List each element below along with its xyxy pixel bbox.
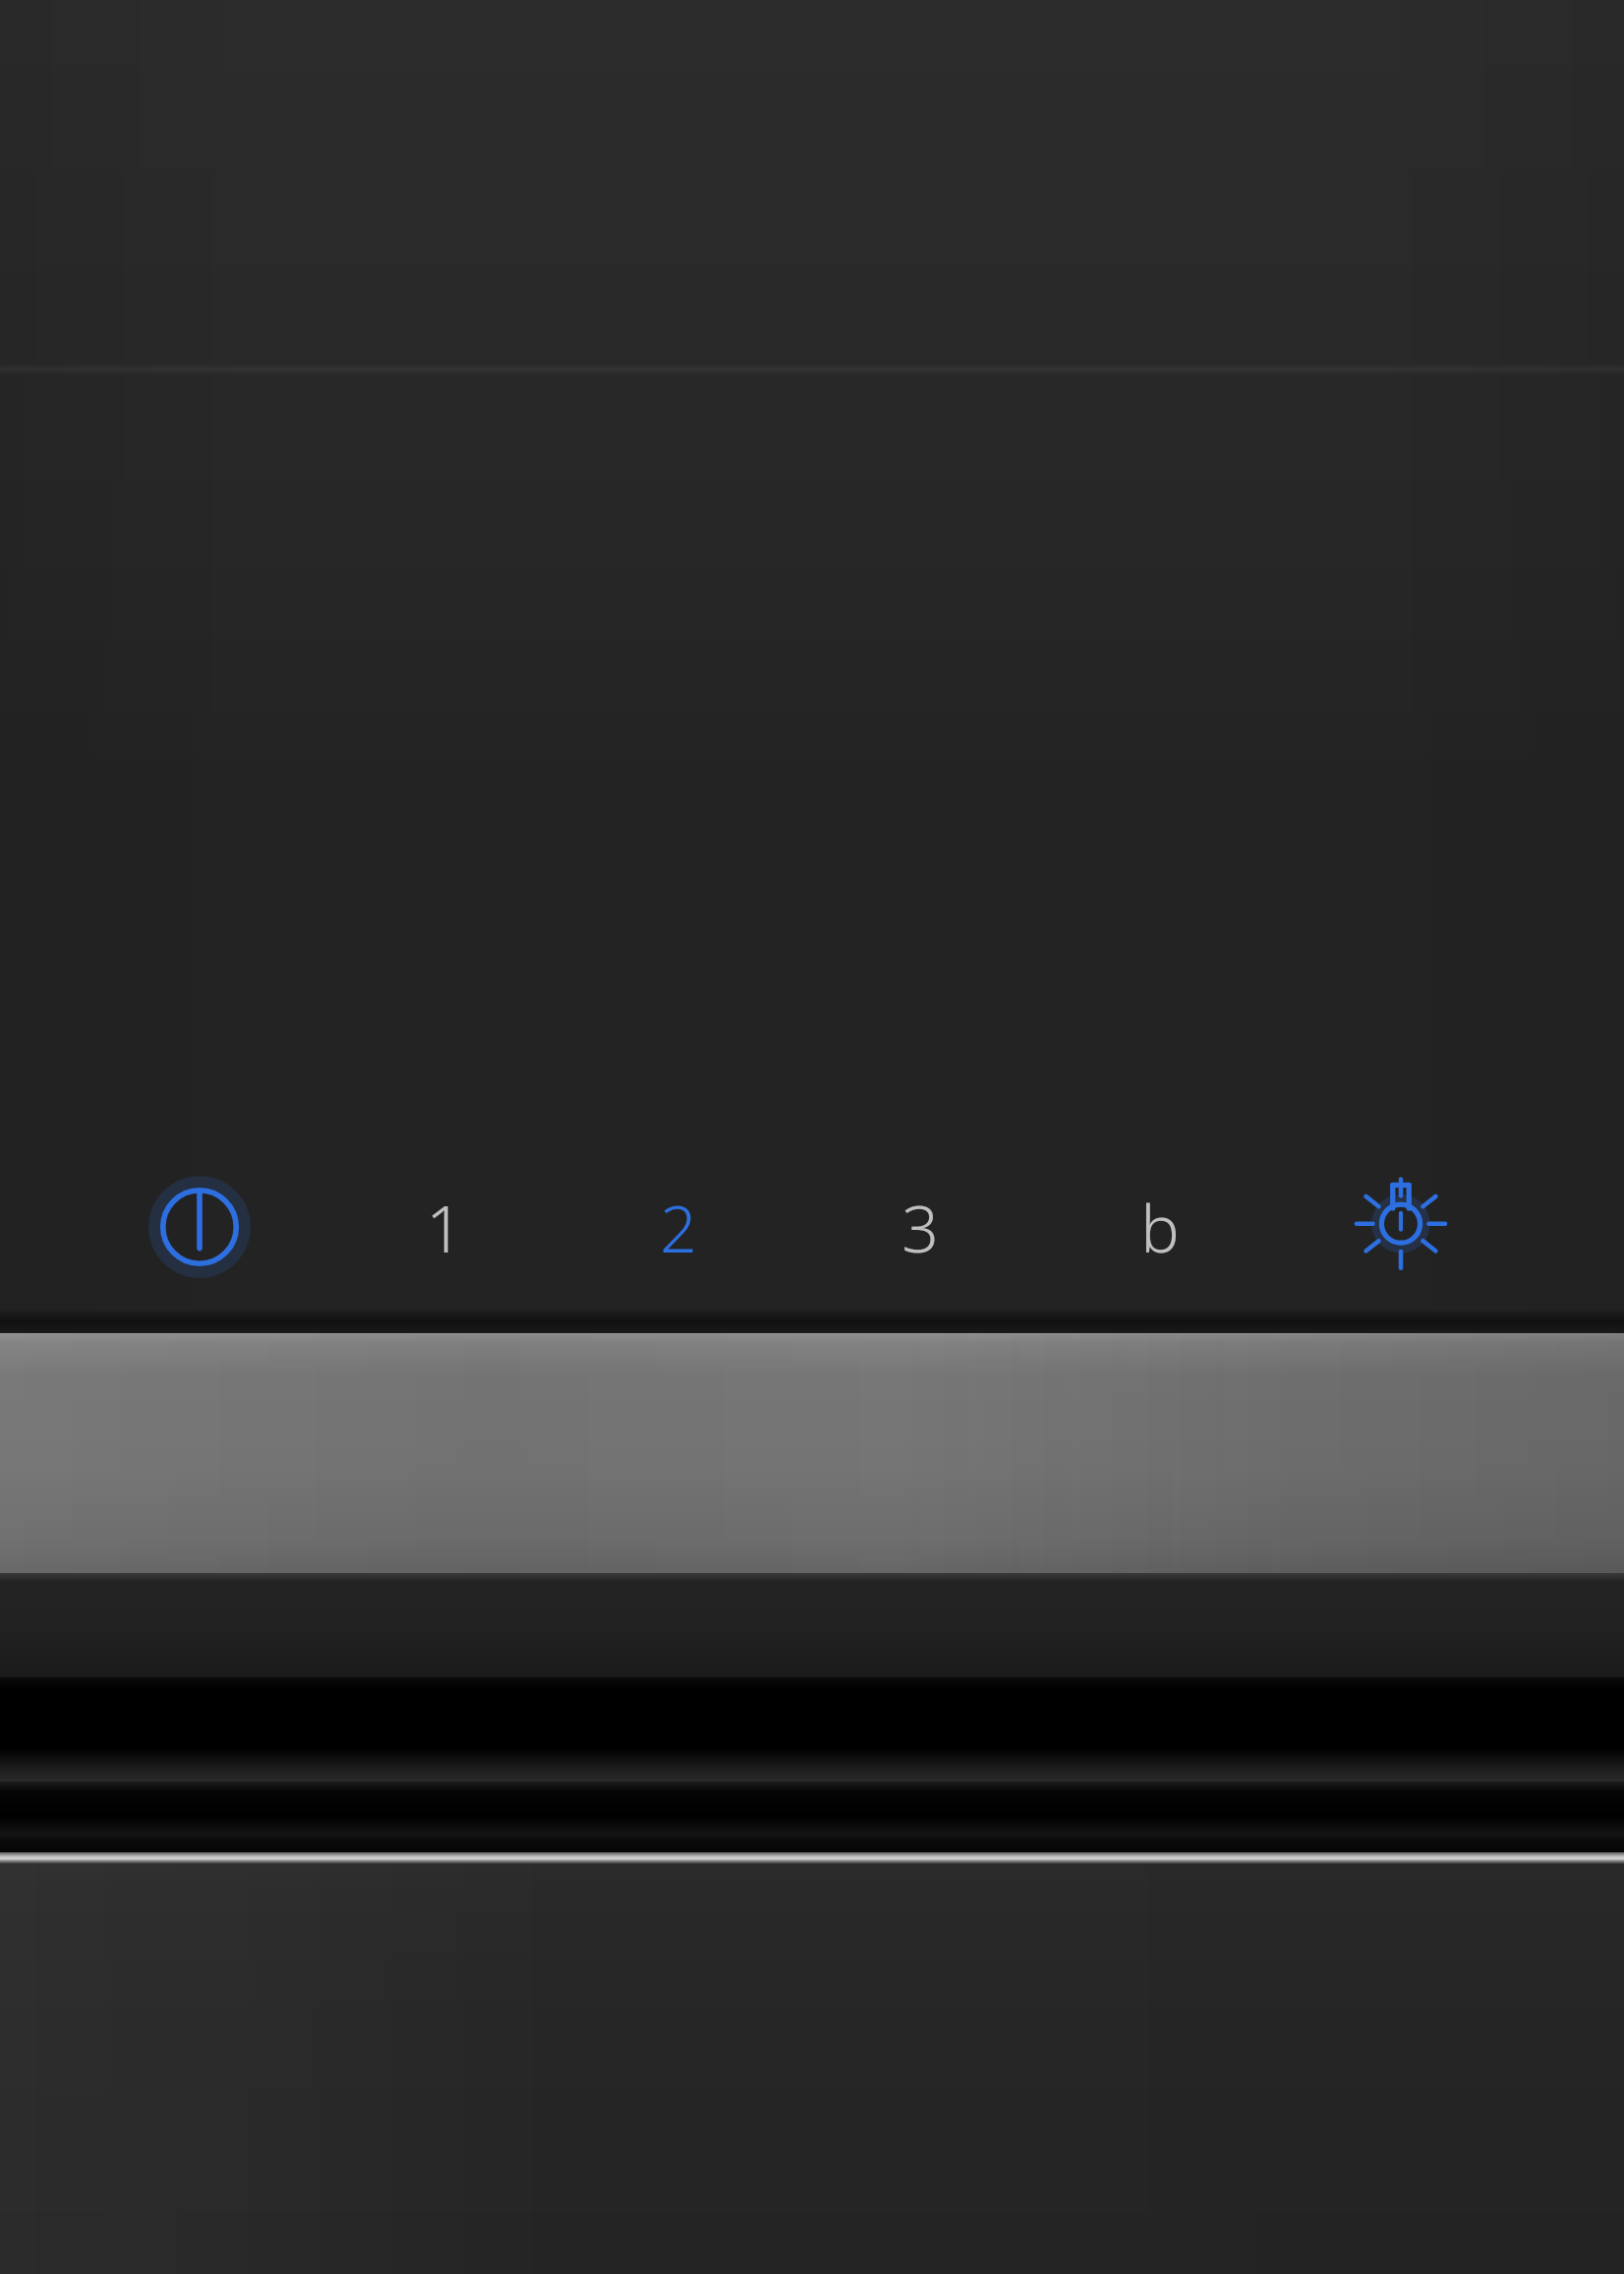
staticText: 1 bbox=[426, 1183, 463, 1271]
staticText: 3 bbox=[901, 1183, 939, 1271]
button[interactable]: Power bbox=[106, 1134, 293, 1320]
button[interactable]: Light bbox=[1307, 1134, 1494, 1320]
staticText: b bbox=[1140, 1183, 1180, 1271]
button[interactable]: 2 bbox=[585, 1134, 772, 1320]
button[interactable]: b bbox=[1067, 1134, 1253, 1320]
staticText: 2 bbox=[660, 1183, 697, 1271]
button[interactable]: 3 bbox=[827, 1134, 1014, 1320]
button[interactable]: 1 bbox=[351, 1134, 538, 1320]
